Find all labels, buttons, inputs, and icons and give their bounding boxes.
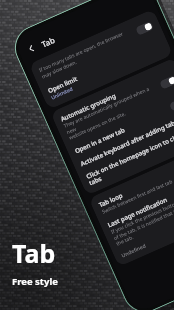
button[interactable]: Toggle setting [169, 97, 174, 112]
button[interactable]: Open limit [39, 32, 172, 107]
button[interactable]: Automatic grouping [51, 60, 174, 146]
staticText: Free style [12, 275, 58, 288]
button[interactable]: Undefined [112, 197, 174, 264]
button[interactable]: Tab loop [90, 146, 174, 221]
button[interactable]: Activate keyboard after adding tab [71, 105, 174, 173]
button[interactable]: Last page notification [99, 166, 174, 252]
staticText: Open in a new tab [73, 125, 126, 154]
staticText: Tab loop [97, 190, 124, 208]
staticText: Click on the homepage icon to close all … [85, 126, 174, 187]
button[interactable]: If too many tabs are open, the browser m… [30, 11, 163, 87]
staticText: Switch between first and last tab [101, 178, 174, 216]
button[interactable]: Toggle setting [159, 75, 174, 90]
staticText: If too many tabs are open, the browser m… [38, 27, 135, 80]
staticText: Activate keyboard after adding tab [79, 118, 174, 167]
staticText: Undefined [120, 242, 147, 259]
staticText: Last page notification [106, 195, 169, 228]
staticText: They are automatically grouped when a ne… [63, 83, 162, 141]
staticText: Open limit [46, 74, 78, 94]
staticText: Unlimited [50, 86, 74, 101]
staticText: Tab [40, 34, 57, 49]
staticText: If you click the previous button at of t… [110, 197, 174, 247]
button[interactable]: Toggle setting [135, 21, 154, 36]
staticText: Automatic grouping [59, 91, 117, 122]
button[interactable]: Open in a new tab [65, 91, 174, 160]
staticText: Tab [12, 236, 56, 270]
button[interactable]: Click on the homepage icon to close all … [77, 117, 174, 193]
button[interactable]: Back [22, 39, 41, 58]
